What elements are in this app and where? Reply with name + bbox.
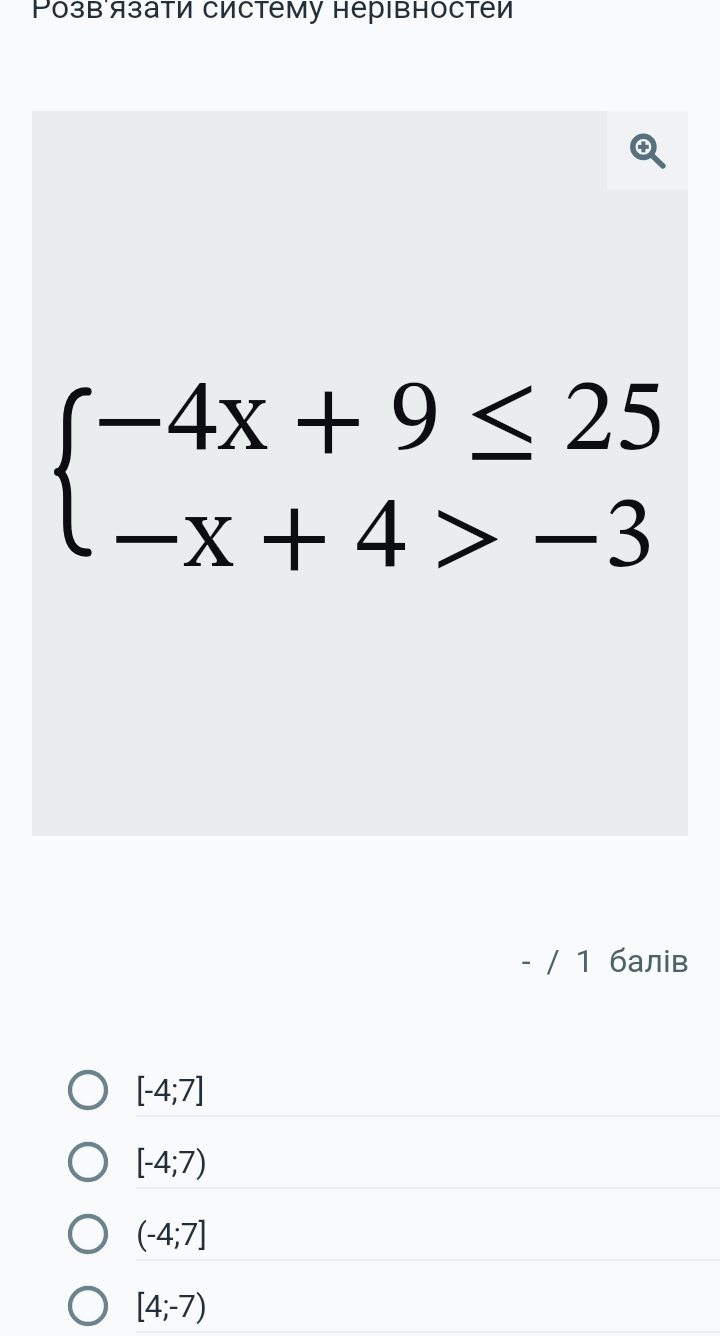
staticText: −4x + 9 ≤ 25 (93, 371, 666, 474)
staticText: (-4;7] (136, 1215, 208, 1253)
staticText: - / 1 балів (0, 942, 689, 980)
button[interactable]: (-4;7] (0, 1198, 720, 1270)
staticText: [4;-7) (136, 1287, 208, 1325)
button[interactable]: [4;-7) (0, 1270, 720, 1336)
staticText: [-4;7) (136, 1143, 208, 1181)
staticText: [-4;7] (136, 1071, 205, 1109)
button[interactable]: Zoom in (607, 111, 688, 190)
staticText: Розв'язати систему нерівностей (31, 0, 515, 26)
button[interactable]: [-4;7) (0, 1126, 720, 1198)
button[interactable]: [-4;7] (0, 1054, 720, 1126)
staticText: −x + 4 > −3 (110, 488, 655, 591)
